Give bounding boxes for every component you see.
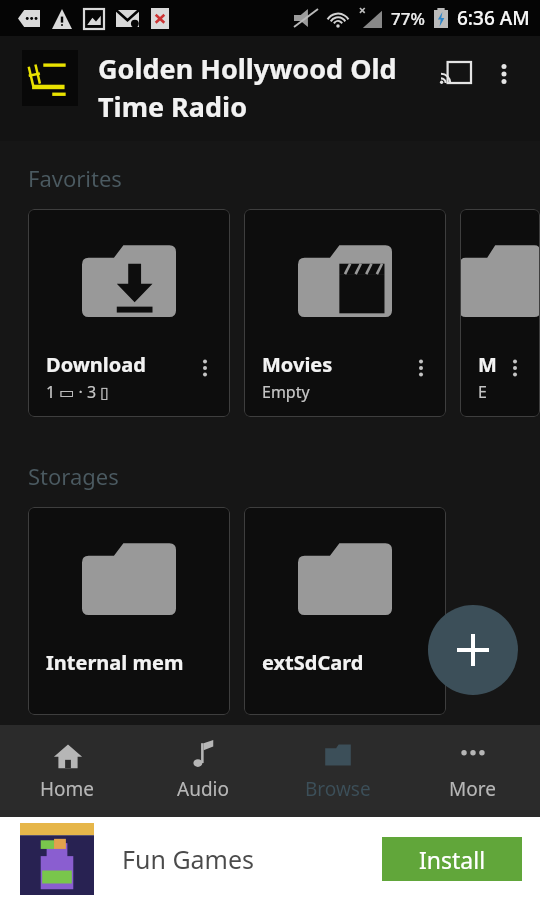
button[interactable]: Add <box>428 605 518 695</box>
staticText: Empty <box>478 381 498 403</box>
button[interactable]: More options <box>404 351 438 385</box>
button[interactable]: More options <box>188 351 222 385</box>
staticText: Golden Hollywood Old Time Radio <box>98 50 426 125</box>
staticText: Fun Games <box>122 842 255 876</box>
staticText: Home <box>40 776 95 802</box>
button[interactable]: Install <box>382 837 522 881</box>
staticText: Storages <box>28 461 119 491</box>
staticText: Movies <box>262 351 333 378</box>
staticText: 77% <box>391 7 425 30</box>
button[interactable]: Browse <box>270 725 405 817</box>
button[interactable]: Internal mem <box>28 507 230 715</box>
staticText: Favorites <box>28 163 122 193</box>
staticText: Music <box>478 351 498 378</box>
button[interactable]: Audio <box>135 725 270 817</box>
staticText: Empty <box>262 381 310 403</box>
button[interactable]: Music <box>460 209 540 417</box>
staticText: Internal mem <box>46 649 184 676</box>
button[interactable]: Fun Games <box>0 817 540 900</box>
staticText: 6:36 AM <box>457 5 530 31</box>
staticText: More <box>449 776 496 802</box>
button[interactable]: Download <box>28 209 230 417</box>
staticText: extSdCard <box>262 649 364 676</box>
staticText: 1 ▭ · 3 ▯ <box>46 381 110 403</box>
button[interactable]: Home <box>0 725 135 817</box>
button[interactable]: Movies <box>244 209 446 417</box>
button[interactable]: extSdCard <box>244 507 446 715</box>
button[interactable]: More options <box>480 50 528 98</box>
staticText: Install <box>419 844 486 875</box>
staticText: Audio <box>177 776 229 802</box>
button[interactable] <box>22 50 78 106</box>
staticText: Download <box>46 351 146 378</box>
staticText: Browse <box>305 776 371 802</box>
button[interactable]: More <box>405 725 540 817</box>
button[interactable]: Cast <box>432 50 480 98</box>
button[interactable]: More options <box>498 351 532 385</box>
